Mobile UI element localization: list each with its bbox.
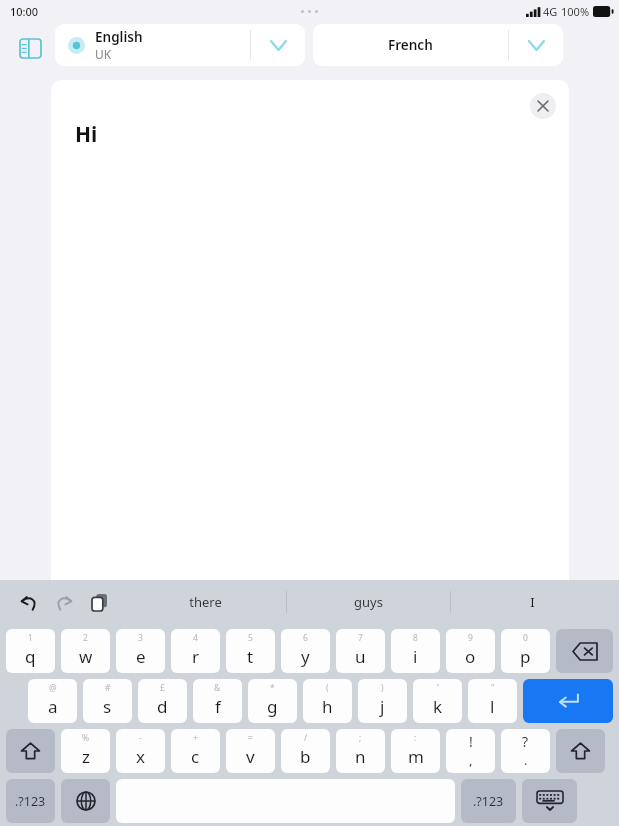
button[interactable]: Hide keyboard (522, 779, 577, 823)
button[interactable]: 7 (336, 629, 385, 673)
button[interactable]: Shift (556, 729, 605, 773)
button[interactable]: Toggle sidebar (14, 32, 46, 64)
staticText: p (520, 645, 531, 668)
staticText: n (355, 745, 366, 768)
button[interactable]: ( (303, 679, 352, 723)
button[interactable]: # (83, 679, 132, 723)
staticText: u (355, 645, 366, 668)
button[interactable]: " (468, 679, 517, 723)
staticText: 6 (303, 632, 308, 644)
button[interactable]: & (193, 679, 242, 723)
button[interactable]: : (391, 729, 440, 773)
staticText: h (322, 695, 333, 718)
staticText: " (491, 682, 495, 694)
staticText: * (270, 682, 275, 694)
staticText: 0 (523, 632, 528, 644)
button[interactable]: guys (287, 580, 450, 624)
staticText: i (413, 645, 418, 668)
button[interactable]: I (451, 580, 614, 624)
staticText: .?123 (473, 793, 504, 810)
staticText: , (469, 751, 473, 769)
button[interactable]: .?123 (461, 779, 516, 823)
staticText: k (433, 695, 443, 718)
button[interactable]: 2 (61, 629, 110, 673)
staticText: . (524, 751, 528, 769)
staticText: & (214, 682, 221, 694)
staticText: c (191, 745, 200, 768)
staticText: r (192, 645, 200, 668)
staticText: I (530, 593, 535, 611)
staticText: English (95, 28, 143, 46)
staticText: a (48, 695, 58, 718)
staticText: ; (359, 732, 362, 744)
staticText: 100% (561, 4, 590, 19)
button[interactable]: 6 (281, 629, 330, 673)
button[interactable]: there (124, 580, 286, 624)
staticText: 9 (468, 632, 473, 644)
button[interactable]: % (61, 729, 110, 773)
staticText: / (304, 732, 308, 744)
staticText: .?123 (15, 793, 46, 810)
button[interactable]: - (116, 729, 165, 773)
button[interactable]: Shift (6, 729, 55, 773)
button[interactable]: ? (501, 729, 550, 773)
button[interactable]: 4 (171, 629, 220, 673)
button[interactable]: 5 (226, 629, 275, 673)
button[interactable]: French (313, 24, 563, 66)
button[interactable]: 3 (116, 629, 165, 673)
staticText: French (388, 36, 433, 54)
staticText: UK (95, 46, 112, 62)
staticText: 5 (248, 632, 253, 644)
button[interactable]: .?123 (6, 779, 55, 823)
staticText: m (408, 745, 424, 768)
button[interactable]: ' (413, 679, 462, 723)
staticText: g (267, 695, 278, 718)
staticText: w (79, 645, 93, 668)
button[interactable]: English (55, 24, 305, 66)
staticText: 8 (413, 632, 418, 644)
staticText: % (82, 732, 90, 744)
staticText: d (157, 695, 168, 718)
staticText: 10:00 (10, 4, 39, 19)
button[interactable]: Change language (61, 779, 110, 823)
button[interactable]: 1 (6, 629, 55, 673)
button[interactable]: @ (28, 679, 77, 723)
staticText: : (414, 732, 417, 744)
button[interactable]: 8 (391, 629, 440, 673)
button[interactable]: 0 (501, 629, 550, 673)
button[interactable]: Undo (14, 587, 44, 617)
button[interactable]: / (281, 729, 330, 773)
staticText: 2 (83, 632, 88, 644)
button[interactable]: Enter (523, 679, 613, 723)
button[interactable]: * (248, 679, 297, 723)
staticText: t (247, 645, 254, 668)
staticText: f (215, 695, 221, 718)
button[interactable]: Close (530, 93, 556, 119)
staticText: ! (469, 732, 473, 751)
staticText: ( (326, 682, 329, 694)
button[interactable]: Backspace (556, 629, 613, 673)
staticText: guys (354, 593, 383, 611)
staticText: o (465, 645, 476, 668)
staticText: ? (522, 732, 529, 751)
staticText: x (136, 745, 145, 768)
button[interactable]: Clipboard (84, 587, 114, 617)
button[interactable]: ! (446, 729, 495, 773)
staticText: ) (381, 682, 384, 694)
staticText: there (189, 593, 222, 611)
button[interactable]: + (171, 729, 220, 773)
staticText: j (380, 695, 385, 718)
staticText: 1 (28, 632, 33, 644)
button[interactable]: Redo (49, 587, 79, 617)
staticText: + (193, 732, 198, 744)
button[interactable]: ; (336, 729, 385, 773)
staticText: z (82, 745, 90, 768)
button[interactable]: 9 (446, 629, 495, 673)
staticText: # (105, 682, 111, 694)
button[interactable]: £ (138, 679, 187, 723)
staticText: @ (49, 682, 57, 694)
button[interactable]: = (226, 729, 275, 773)
staticText: b (300, 745, 311, 768)
button[interactable]: ) (358, 679, 407, 723)
